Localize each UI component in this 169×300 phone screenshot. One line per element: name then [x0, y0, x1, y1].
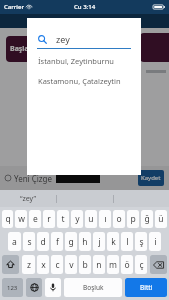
staticText: Kaydet [141, 174, 161, 182]
staticText: zey [56, 33, 70, 45]
button[interactable]: b [79, 255, 91, 274]
button[interactable]: c [51, 255, 63, 274]
button[interactable]: h [79, 232, 91, 251]
staticText: Carrier [4, 3, 24, 11]
staticText: s [27, 236, 32, 248]
button[interactable]: Dictate [45, 278, 61, 297]
button[interactable]: i [149, 232, 161, 251]
staticText: l [126, 236, 129, 248]
staticText: Boşluk [83, 283, 104, 292]
staticText: g [68, 236, 74, 248]
staticText: j [98, 236, 101, 248]
button[interactable]: w [15, 210, 27, 228]
button[interactable]: n [93, 255, 105, 274]
staticText: d [40, 236, 46, 248]
button[interactable]: m [107, 255, 119, 274]
button[interactable]: d [37, 232, 49, 251]
button[interactable]: ü [155, 210, 167, 228]
button[interactable]: t [57, 210, 69, 228]
button[interactable]: ö [121, 255, 133, 274]
staticText: y [75, 213, 80, 225]
button[interactable]: Başlangıç [6, 36, 64, 62]
button[interactable]: o [113, 210, 125, 228]
staticText: h [82, 236, 88, 248]
staticText: n [96, 259, 102, 271]
button[interactable]: 123 [2, 278, 23, 297]
staticText: 123 [7, 284, 18, 292]
button[interactable]: ı [99, 210, 111, 228]
staticText: i [154, 236, 157, 248]
button[interactable]: s [23, 232, 35, 251]
button[interactable]: Backspace [150, 255, 167, 274]
staticText: İstanbul, Zeytinburnu [38, 56, 114, 66]
button[interactable]: ş [135, 232, 147, 251]
staticText: Yeni Çizge [14, 173, 53, 184]
staticText: ğ [144, 213, 150, 225]
staticText: k [111, 236, 116, 248]
staticText: u [88, 213, 94, 225]
staticText: Kastamonu, Çatalzeytin [38, 76, 121, 86]
button[interactable]: y [71, 210, 83, 228]
other: Search [38, 35, 47, 44]
button[interactable]: q [2, 210, 13, 228]
staticText: Cu 3:14 [74, 3, 96, 11]
staticText: q [5, 213, 11, 225]
staticText: ö [124, 259, 130, 271]
button[interactable]: l [121, 232, 133, 251]
button[interactable]: x [37, 255, 49, 274]
staticText: ş [139, 236, 144, 248]
button[interactable]: g [65, 232, 77, 251]
staticText: f [56, 236, 59, 248]
button[interactable]: Kastamonu, Çatalzeytin [27, 75, 141, 86]
staticText: w [18, 213, 25, 225]
button[interactable]: r [43, 210, 55, 228]
staticText: v [69, 259, 74, 271]
staticText: r [47, 213, 51, 225]
button[interactable]: a [8, 232, 21, 251]
staticText: p [130, 213, 136, 225]
button[interactable]: Kaydet [138, 170, 164, 186]
staticText: ü [158, 213, 164, 225]
staticText: a [12, 236, 17, 248]
button[interactable]: v [65, 255, 77, 274]
button[interactable] [140, 33, 169, 62]
button[interactable]: f [51, 232, 63, 251]
staticText: o [116, 213, 122, 225]
button[interactable]: Boşluk [64, 278, 122, 297]
staticText: c [55, 259, 60, 271]
button[interactable]: İstanbul, Zeytinburnu [27, 55, 141, 66]
button[interactable]: p [127, 210, 139, 228]
staticText: t [61, 213, 65, 225]
button[interactable]: ç [135, 255, 147, 274]
button[interactable]: z [22, 255, 35, 274]
staticText: Bitti [140, 283, 153, 292]
staticText: e [33, 213, 38, 225]
staticText: z [27, 259, 31, 271]
staticText: x [41, 259, 46, 271]
button[interactable]: Search [38, 30, 130, 48]
staticText: “zey” [20, 194, 36, 204]
staticText: ı [104, 213, 107, 225]
button[interactable]: j [93, 232, 105, 251]
staticText: b [82, 259, 88, 271]
button[interactable]: e [29, 210, 41, 228]
button[interactable]: Change keyboard [26, 278, 42, 297]
button[interactable]: Bitti [125, 278, 167, 297]
staticText: m [109, 259, 117, 271]
staticText: ç [139, 259, 144, 271]
button[interactable]: Shift [2, 255, 19, 274]
staticText: Başlangıç [10, 44, 44, 54]
button[interactable]: “zey” [20, 194, 36, 204]
button[interactable]: u [85, 210, 97, 228]
button[interactable]: k [107, 232, 119, 251]
button[interactable]: ğ [141, 210, 153, 228]
